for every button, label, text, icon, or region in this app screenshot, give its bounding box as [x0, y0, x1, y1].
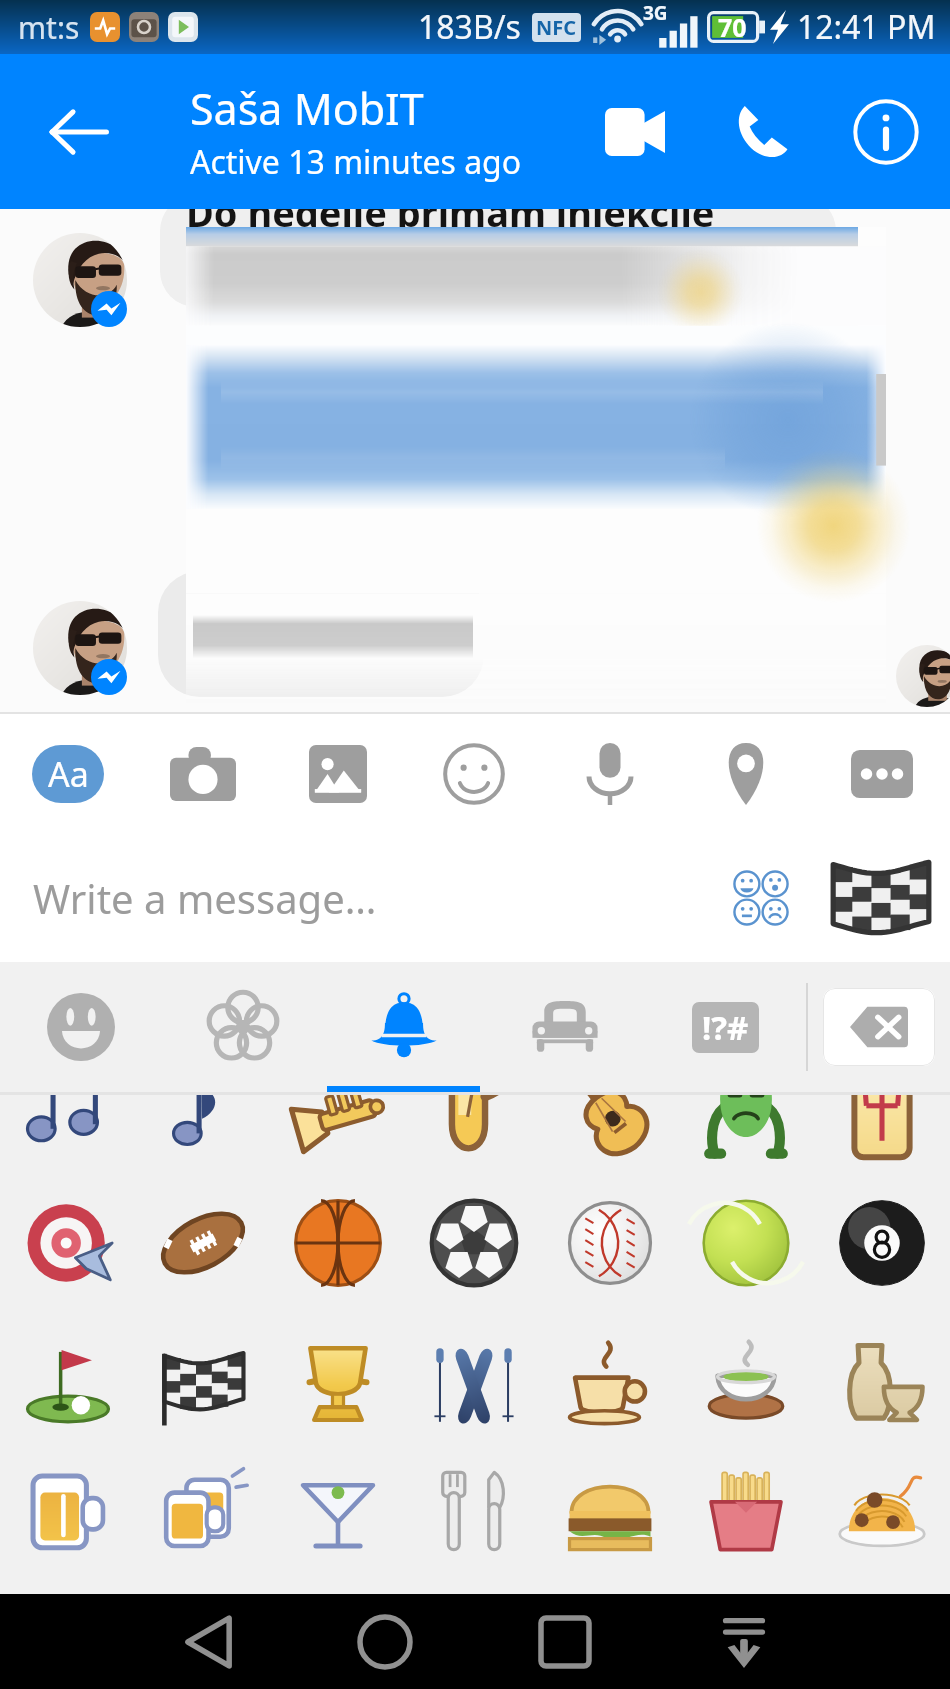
button[interactable]: Soccer ball: [406, 1180, 542, 1306]
button[interactable]: Beers: [135, 1448, 270, 1574]
staticText: Write a message…: [33, 871, 377, 925]
button[interactable]: Trophy: [270, 1322, 406, 1448]
staticText: 3G: [643, 0, 668, 26]
button[interactable]: Saxophone: [406, 1095, 542, 1178]
button[interactable]: Skis: [406, 1322, 542, 1448]
button[interactable]: Musical note: [135, 1095, 270, 1178]
button[interactable]: Camera: [135, 714, 270, 834]
button[interactable]: Basketball: [270, 1180, 406, 1306]
staticText: 183B/s: [418, 5, 521, 49]
button[interactable]: Coffee: [542, 1322, 678, 1448]
button[interactable]: Baseball: [542, 1180, 678, 1306]
button[interactable]: Symbols: [645, 962, 806, 1092]
button[interactable]: Musical notes: [0, 1095, 135, 1178]
button[interactable]: American football: [135, 1180, 270, 1306]
button[interactable]: Home: [321, 1594, 449, 1689]
staticText: Do nedelje primam injekcije: [186, 209, 715, 238]
button[interactable]: Saša MobIT profile picture: [33, 601, 127, 695]
button[interactable]: Chequered flag: [135, 1322, 270, 1448]
button[interactable]: Message from Saša MobIT: [158, 571, 484, 697]
button[interactable]: More options: [814, 714, 950, 834]
staticText: 70: [718, 10, 747, 44]
button[interactable]: Recent apps: [501, 1594, 629, 1689]
button[interactable]: Send location: [678, 714, 814, 834]
button[interactable]: Frog: [678, 1095, 814, 1178]
button[interactable]: Nature: [162, 962, 323, 1092]
button[interactable]: Backspace: [808, 962, 950, 1092]
button[interactable]: Hamburger: [542, 1448, 678, 1574]
staticText: Active 13 minutes ago: [190, 140, 522, 184]
staticText: mt:s: [18, 7, 80, 48]
staticText: !?#: [702, 1005, 749, 1050]
button[interactable]: Photo gallery: [270, 714, 406, 834]
button[interactable]: Objects: [323, 962, 484, 1092]
staticText: NFC: [536, 14, 577, 41]
button[interactable]: Tennis ball: [678, 1180, 814, 1306]
button[interactable]: Hide keyboard: [680, 1594, 808, 1689]
button[interactable]: Dart: [0, 1180, 135, 1306]
button[interactable]: Conversation info: [822, 54, 950, 209]
button[interactable]: Tea: [678, 1322, 814, 1448]
button[interactable]: Stickers: [406, 714, 542, 834]
button[interactable]: Voice message: [542, 714, 678, 834]
button[interactable]: Back: [145, 1594, 273, 1689]
button[interactable]: Guitar: [542, 1095, 678, 1178]
button[interactable]: Fork and knife: [406, 1448, 542, 1574]
button[interactable]: Text formatting: [0, 714, 135, 834]
button[interactable]: Golf: [0, 1322, 135, 1448]
button[interactable]: Smileys and people: [0, 962, 162, 1092]
button[interactable]: Trumpet: [270, 1095, 406, 1178]
staticText: Saša MobIT: [190, 79, 424, 138]
button[interactable]: Voice call: [697, 54, 825, 209]
button[interactable]: Travel and places: [484, 962, 645, 1092]
button[interactable]: Fries: [678, 1448, 814, 1574]
button[interactable]: Cocktail: [270, 1448, 406, 1574]
staticText: 12:41 PM: [797, 5, 936, 49]
staticText: Aa: [48, 751, 89, 797]
button[interactable]: Video call: [571, 54, 699, 209]
button[interactable]: Spaghetti: [814, 1448, 950, 1574]
button[interactable]: Send sticker: [816, 843, 946, 953]
button[interactable]: Back: [8, 54, 148, 209]
button[interactable]: Beer: [0, 1448, 135, 1574]
button[interactable]: Message: Do nedelje primam injekcije: [160, 209, 836, 307]
button[interactable]: Saša MobIT profile picture: [33, 233, 127, 327]
button[interactable]: Sake: [814, 1322, 950, 1448]
button[interactable]: Eight ball: [814, 1180, 950, 1306]
button[interactable]: Emoji keyboard: [706, 843, 816, 953]
button[interactable]: Mahjong tile: [814, 1095, 950, 1178]
